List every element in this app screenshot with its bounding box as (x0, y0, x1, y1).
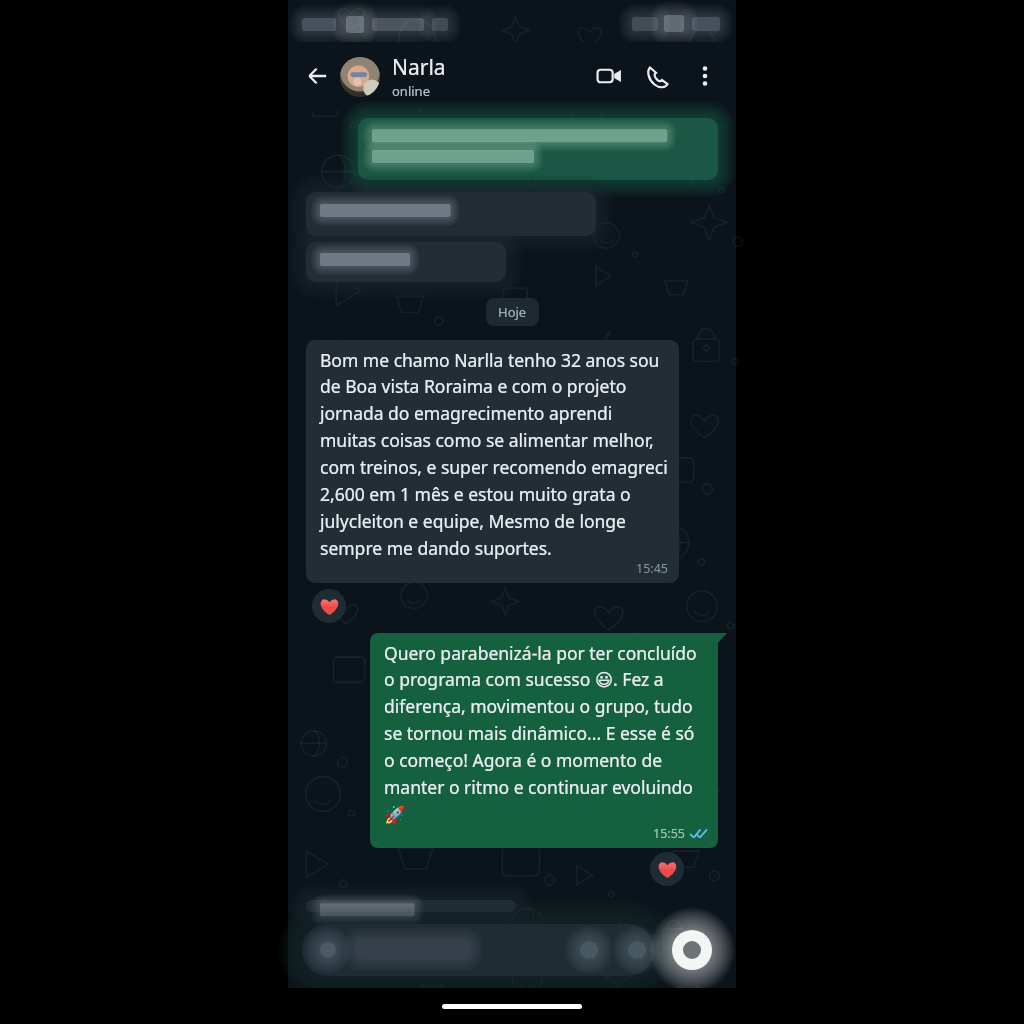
button[interactable]: Call (640, 59, 674, 93)
button[interactable]: Message input (288, 912, 736, 988)
staticText: 15:45 (636, 560, 668, 577)
staticText: Narla (392, 53, 446, 82)
staticText: 15:55 (653, 825, 685, 842)
staticText: online (392, 82, 430, 100)
button[interactable]: More options (688, 59, 722, 93)
button[interactable]: Video call (592, 59, 626, 93)
button[interactable]: Narla (340, 53, 592, 100)
button[interactable]: Bom me chamo Narlla tenho 32 anos sou de… (306, 340, 679, 583)
staticText: Quero parabenizá-la por ter concluído o … (384, 641, 707, 825)
staticText: Bom me chamo Narlla tenho 32 anos sou de… (320, 348, 668, 560)
button[interactable]: Heart reaction (650, 852, 684, 886)
button[interactable]: Back (298, 56, 338, 96)
button[interactable]: Heart reaction (312, 589, 346, 623)
staticText: Hoje (498, 303, 527, 321)
